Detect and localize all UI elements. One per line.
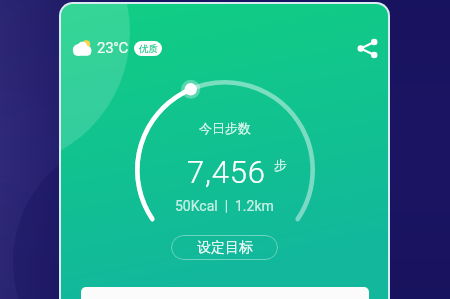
staticText: 50Kcal | 1.2km [175, 198, 274, 214]
button[interactable]: 优质 [134, 41, 162, 56]
button[interactable]: Share [354, 35, 380, 61]
staticText: 优质 [139, 43, 158, 55]
button[interactable]: 设定目标 [171, 235, 278, 260]
staticText: 7,456 [187, 154, 266, 190]
staticText: 23°C [97, 39, 129, 57]
staticText: 设定目标 [197, 239, 253, 257]
button[interactable] [81, 287, 369, 299]
staticText: 今日步数 [199, 120, 251, 136]
staticText: 步 [274, 157, 287, 173]
